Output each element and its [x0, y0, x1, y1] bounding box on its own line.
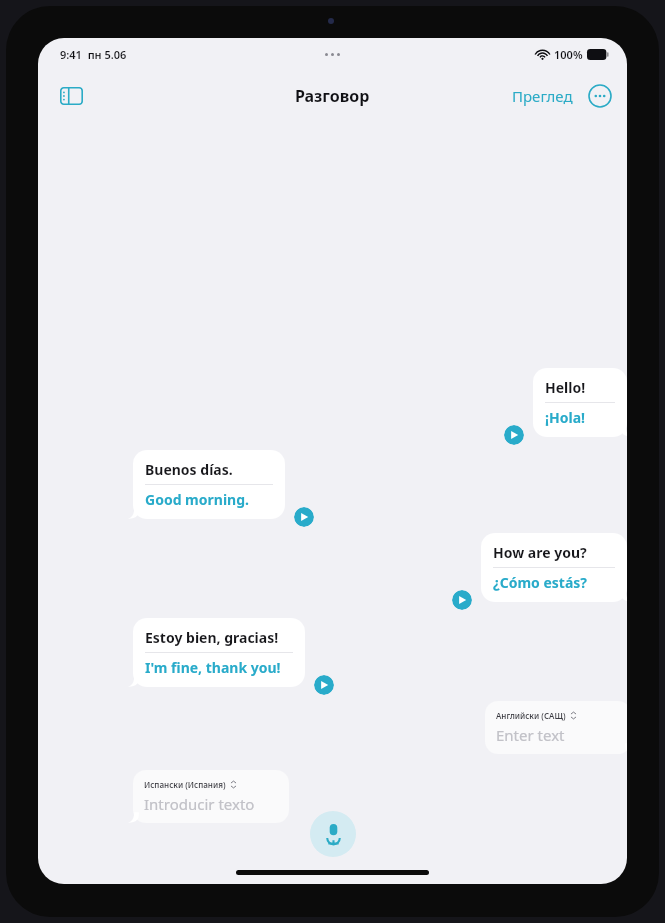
button[interactable]: Play audio [294, 507, 314, 527]
staticText: Introducir texto [144, 794, 255, 814]
staticText: 100% [554, 47, 583, 62]
button[interactable]: Play audio [452, 590, 472, 610]
button[interactable]: How are you? [481, 533, 627, 602]
staticText: Hello! [545, 378, 586, 397]
button[interactable]: Испански (Испания) [133, 770, 289, 823]
button[interactable]: Show sidebar [54, 79, 88, 113]
staticText: Enter text [496, 725, 565, 745]
button[interactable]: Play audio [504, 425, 524, 445]
staticText: How are you? [493, 543, 587, 562]
staticText: Good morning. [145, 490, 249, 509]
staticText: 9:41 пн 5.06 [60, 47, 127, 62]
button[interactable]: Play audio [314, 675, 334, 695]
staticText: ¿Cómo estás? [493, 573, 588, 592]
staticText: ¡Hola! [545, 408, 585, 427]
button[interactable]: Английски (САЩ) [485, 701, 627, 754]
staticText: Испански (Испания) [144, 779, 226, 790]
staticText: Преглед [512, 86, 573, 106]
button[interactable]: Преглед [508, 82, 577, 110]
staticText: Estoy bien, gracias! [145, 628, 279, 647]
staticText: I'm fine, thank you! [145, 658, 281, 677]
button[interactable]: Estoy bien, gracias! [133, 618, 305, 687]
staticText: Buenos días. [145, 460, 233, 479]
button[interactable]: Buenos días. [133, 450, 285, 519]
button[interactable]: More options [587, 83, 613, 109]
staticText: Разговор [295, 85, 370, 107]
button[interactable]: Start recording [310, 811, 356, 857]
staticText: Английски (САЩ) [496, 710, 566, 721]
button[interactable]: Hello! [533, 368, 627, 437]
